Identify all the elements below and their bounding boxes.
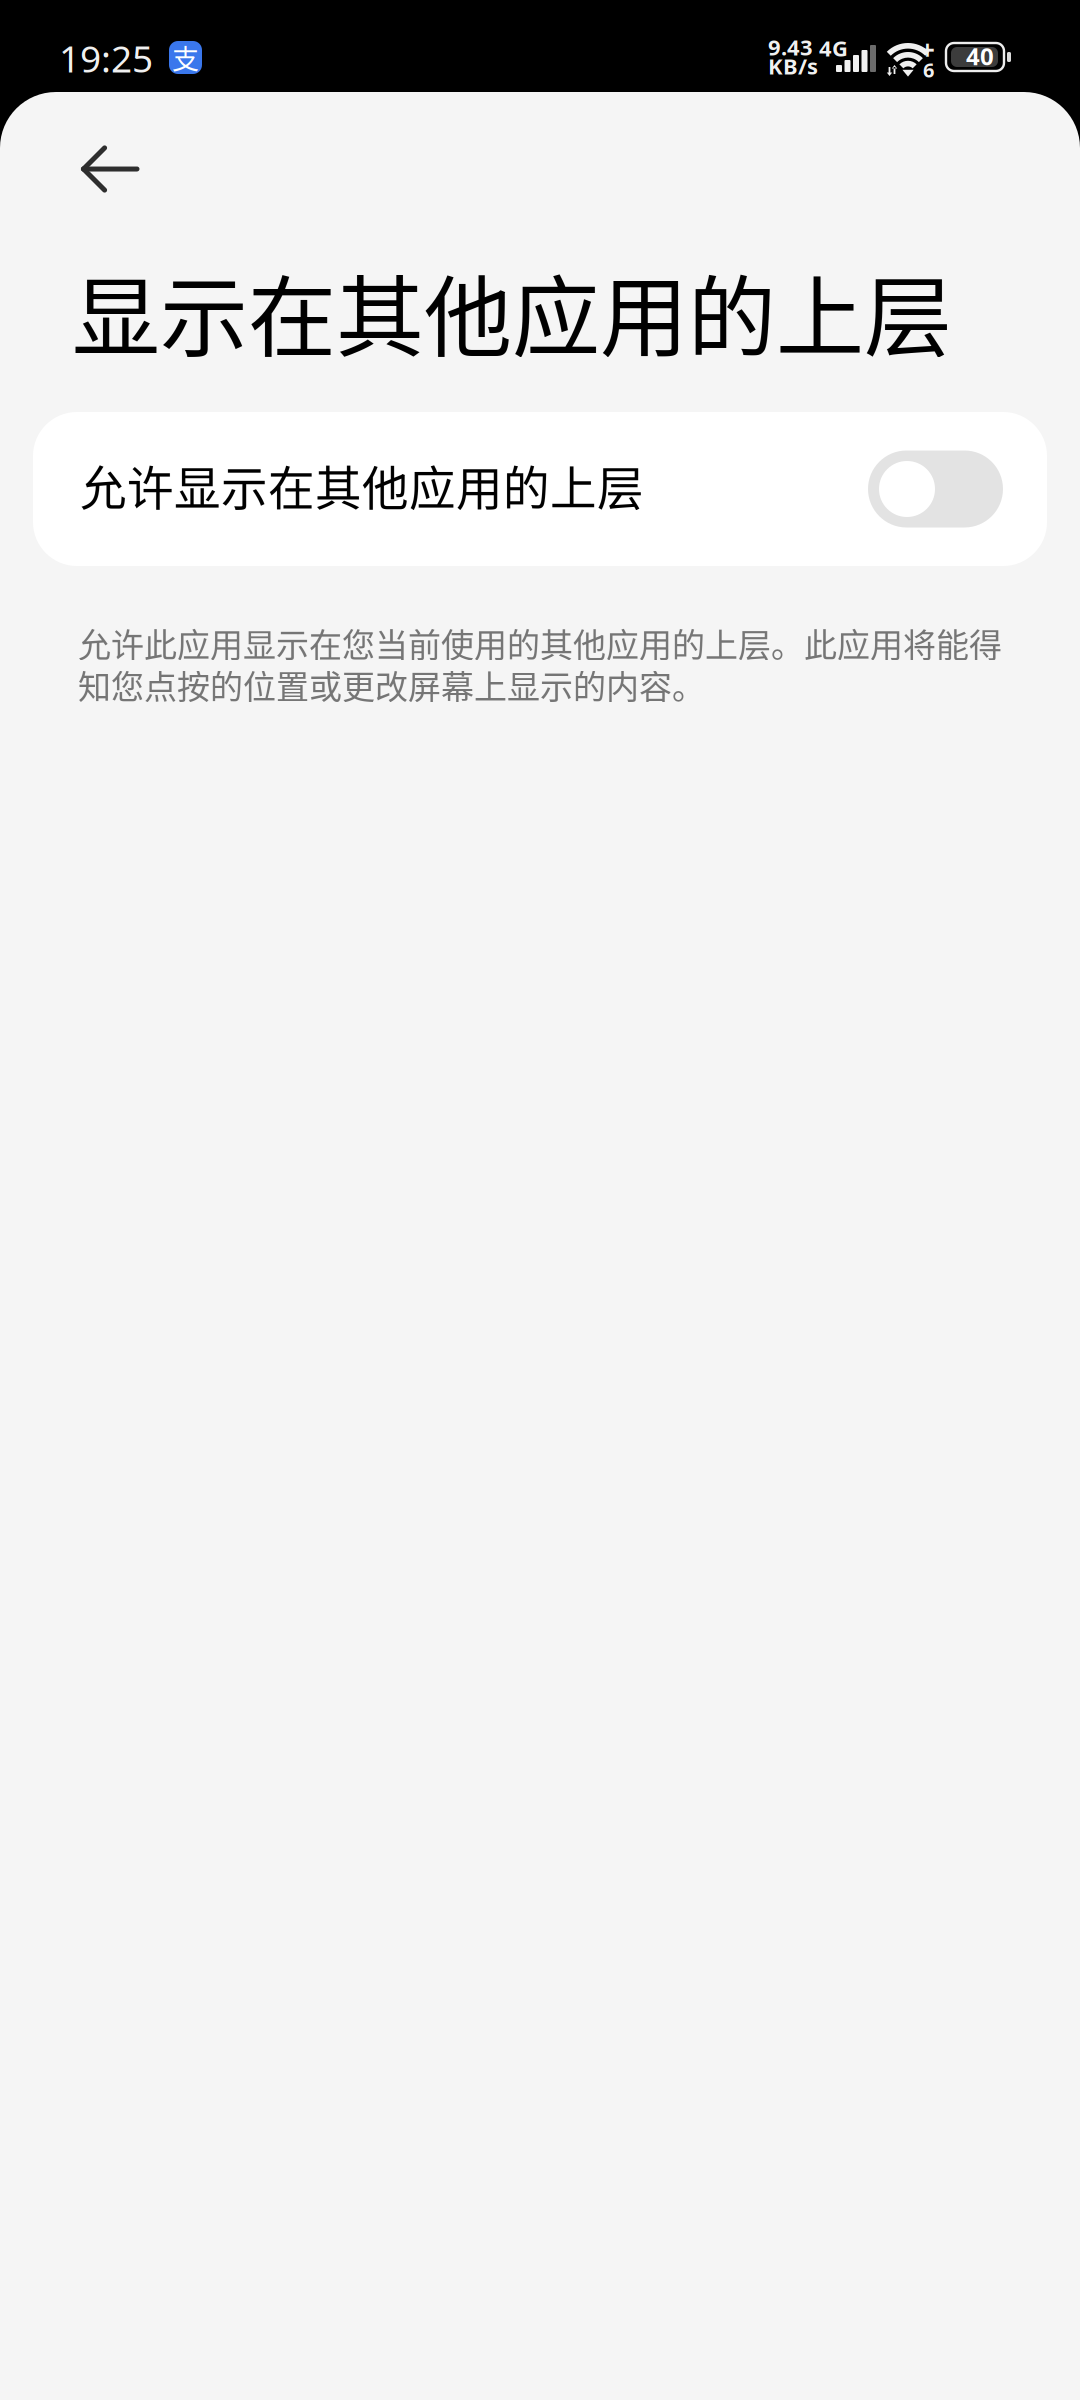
staticText: + [920, 32, 935, 67]
staticText: 6 [923, 56, 934, 83]
staticText: 支 [172, 38, 199, 77]
staticText: 19:25 [59, 33, 153, 83]
button[interactable]: 允许显示在其他应用的上层 [33, 412, 1047, 566]
staticText: KB/s [768, 51, 818, 81]
staticText: 允许此应用显示在您当前使用的其他应用的上层。此应用将能得知您点按的位置或更改屏幕… [78, 619, 1002, 709]
staticText: 9.43 [768, 32, 813, 62]
staticText: 显示在其他应用的上层 [72, 247, 952, 374]
button[interactable]: Back [0, 92, 200, 212]
staticText: 4G [819, 33, 848, 63]
staticText: 允许显示在其他应用的上层 [80, 451, 644, 519]
staticText: 40 [966, 40, 994, 72]
